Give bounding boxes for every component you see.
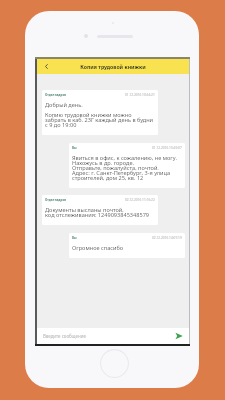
button[interactable]: Вы [69, 143, 185, 188]
button[interactable]: Вы [69, 233, 185, 258]
staticText: Введите сообщение [43, 333, 169, 339]
staticText: 01.12.2016 15:49:07 [152, 146, 182, 150]
button[interactable]: Send [169, 328, 189, 344]
staticText: Явиться в офис, к сожалению, не могу. На… [72, 154, 177, 182]
staticText: Вы [72, 236, 77, 240]
staticText: Огромное спасибо [72, 244, 124, 252]
staticText: Добрый день. Копию трудовой книжки можно… [45, 101, 154, 129]
button[interactable]: Отдел кадров [42, 90, 158, 135]
staticText: Документы высланы почтой, код отслеживан… [45, 206, 150, 219]
button[interactable]: Отдел кадров [42, 195, 158, 225]
staticText: Отдел кадров [45, 198, 67, 202]
staticText: 02.12.2016 14:07:19 [152, 236, 182, 240]
staticText: Вы [72, 146, 77, 150]
staticText: Копия трудовой книжки [37, 63, 189, 70]
staticText: Отдел кадров [45, 93, 67, 97]
staticText: 01.12.2016 10:34:21 [125, 93, 155, 97]
button[interactable]: Back [37, 58, 55, 74]
staticText: 02.12.2016 11:16:22 [125, 198, 155, 202]
